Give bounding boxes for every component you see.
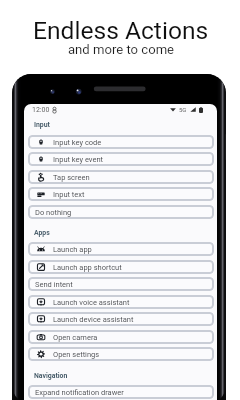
button[interactable]: Tap screen	[28, 170, 214, 184]
button[interactable]: Open camera	[28, 330, 214, 344]
button[interactable]: Expand notification drawer	[28, 385, 214, 399]
staticText: Launch voice assistant	[53, 298, 130, 307]
button[interactable]: Input key event	[28, 152, 214, 166]
button[interactable]: Send intent	[28, 277, 214, 291]
button[interactable]: Open settings	[28, 347, 214, 361]
staticText: Input key event	[53, 155, 103, 164]
staticText: Open camera	[53, 333, 98, 342]
other: Notification	[52, 107, 57, 113]
staticText: Input text	[53, 190, 85, 199]
staticText: Apps	[34, 229, 50, 237]
button[interactable]: Launch voice assistant	[28, 295, 214, 309]
button[interactable]: Launch app	[28, 242, 214, 256]
staticText: Tap screen	[53, 173, 90, 182]
staticText: Launch app	[53, 245, 92, 254]
other: Signal strength	[190, 107, 196, 112]
staticText: Launch device assistant	[53, 315, 134, 324]
staticText: 5G	[179, 106, 187, 113]
button[interactable]: Input text	[28, 187, 214, 201]
staticText: Input	[34, 121, 50, 129]
button[interactable]: Input key code	[28, 135, 214, 149]
other: Wi-Fi	[170, 107, 176, 112]
staticText: Expand notification drawer	[35, 388, 124, 397]
staticText: and more to come	[68, 42, 175, 57]
staticText: Send intent	[35, 280, 73, 289]
button[interactable]: Launch device assistant	[28, 312, 214, 326]
button[interactable]: Launch app shortcut	[28, 260, 214, 274]
other: Battery	[199, 107, 203, 113]
staticText: Input key code	[53, 138, 102, 147]
staticText: Open settings	[53, 350, 100, 359]
staticText: Navigation	[34, 372, 68, 380]
staticText: Launch app shortcut	[53, 263, 122, 272]
staticText: Endless Actions	[33, 16, 209, 45]
button[interactable]: Do nothing	[28, 205, 214, 219]
staticText: Do nothing	[35, 208, 72, 217]
staticText: 12:00	[32, 106, 50, 114]
